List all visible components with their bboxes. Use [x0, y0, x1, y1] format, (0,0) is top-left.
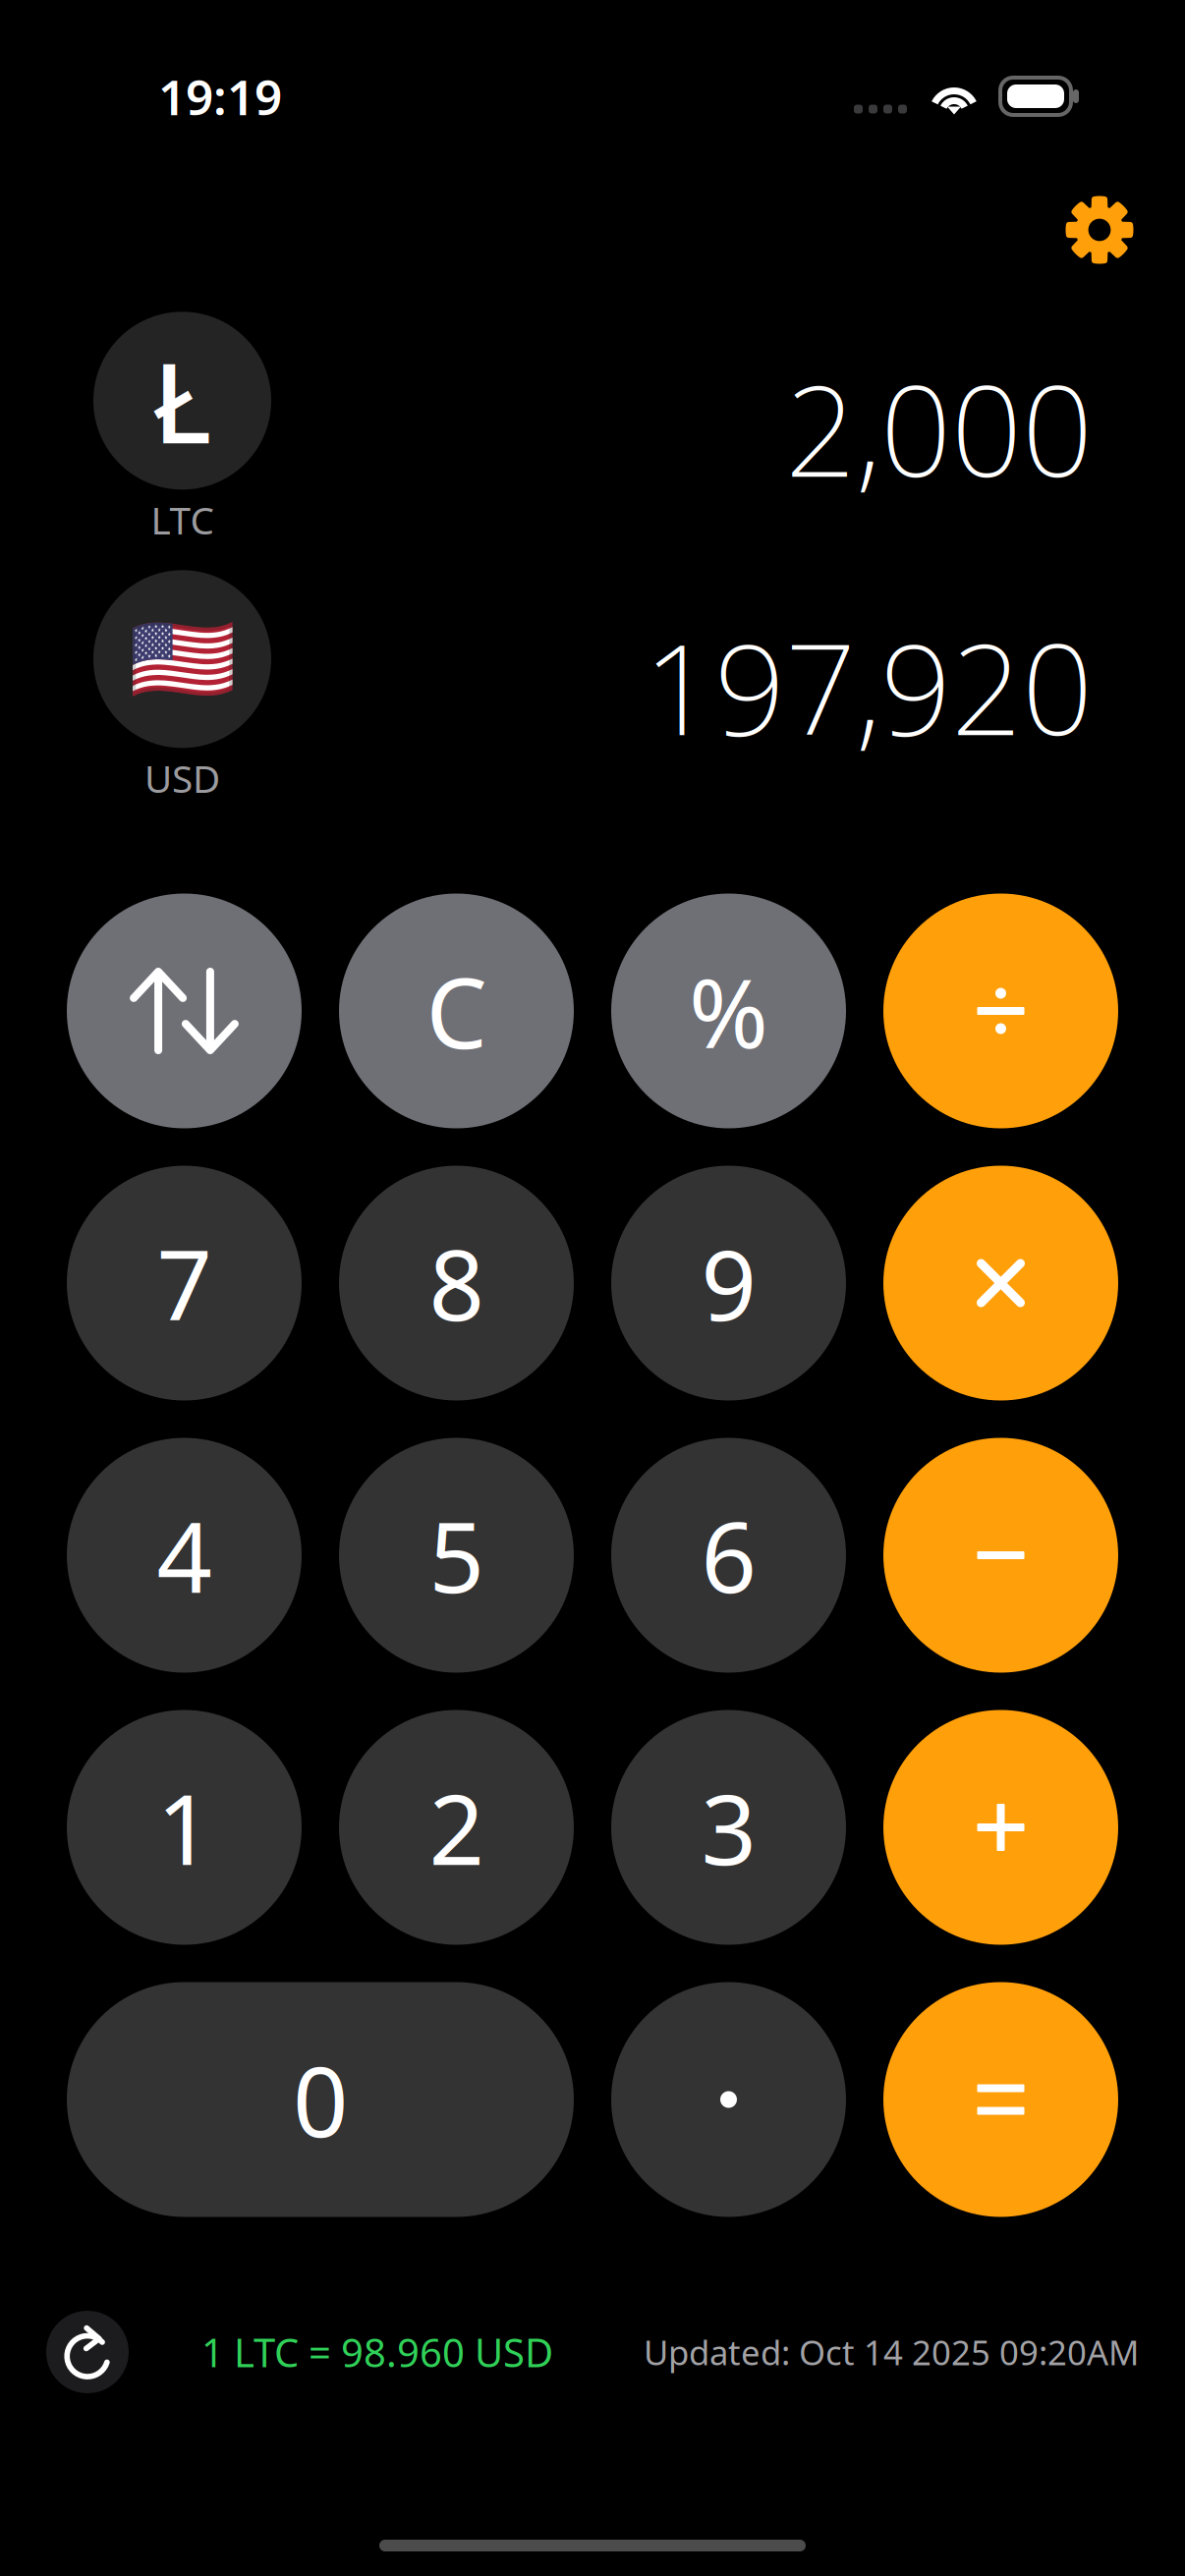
button[interactable]: [883, 1710, 1118, 1945]
staticText: Updated: Oct 14 2025 09:20AM: [644, 2329, 1139, 2375]
button[interactable]: Refresh exchange rate: [46, 2311, 129, 2393]
staticText: 6: [701, 1491, 756, 1620]
staticText: 4: [157, 1491, 212, 1620]
button[interactable]: 4: [67, 1438, 302, 1673]
button[interactable]: C: [339, 894, 574, 1128]
button[interactable]: 6: [611, 1438, 846, 1673]
button[interactable]: %: [611, 894, 846, 1128]
staticText: 19:19: [158, 64, 282, 128]
button[interactable]: Ł: [93, 312, 271, 545]
button[interactable]: 8: [339, 1166, 574, 1400]
button[interactable]: [883, 894, 1118, 1128]
staticText: 1: [157, 1763, 212, 1892]
staticText: Ł: [153, 328, 212, 474]
button[interactable]: 5: [339, 1438, 574, 1673]
staticText: 197,920: [644, 604, 1093, 769]
button[interactable]: [883, 1982, 1118, 2217]
button[interactable]: 7: [67, 1166, 302, 1400]
button[interactable]: 0: [67, 1982, 574, 2217]
button[interactable]: [883, 1438, 1118, 1673]
staticText: 2,000: [785, 346, 1093, 511]
button[interactable]: 197,920: [644, 604, 1093, 769]
staticText: 0: [293, 2035, 348, 2164]
staticText: LTC: [151, 494, 214, 545]
staticText: 8: [429, 1219, 484, 1347]
staticText: 1 LTC = 98.960 USD: [201, 2326, 553, 2378]
button[interactable]: 1: [67, 1710, 302, 1945]
staticText: 5: [429, 1491, 484, 1620]
staticText: 2: [429, 1763, 484, 1892]
staticText: 3: [701, 1763, 756, 1892]
button[interactable]: 3: [611, 1710, 846, 1945]
staticText: C: [426, 947, 487, 1075]
button[interactable]: Settings: [1050, 181, 1149, 279]
staticText: 7: [157, 1219, 212, 1347]
staticText: USD: [144, 753, 220, 803]
button[interactable]: 2: [339, 1710, 574, 1945]
button[interactable]: [883, 1166, 1118, 1400]
staticText: 🇺🇸: [128, 610, 236, 708]
button[interactable]: [67, 894, 302, 1128]
staticText: %: [689, 947, 768, 1075]
button[interactable]: 9: [611, 1166, 846, 1400]
button[interactable]: 🇺🇸: [93, 570, 271, 803]
button[interactable]: 2,000: [785, 346, 1093, 511]
button[interactable]: [611, 1982, 846, 2217]
staticText: 9: [701, 1219, 756, 1347]
